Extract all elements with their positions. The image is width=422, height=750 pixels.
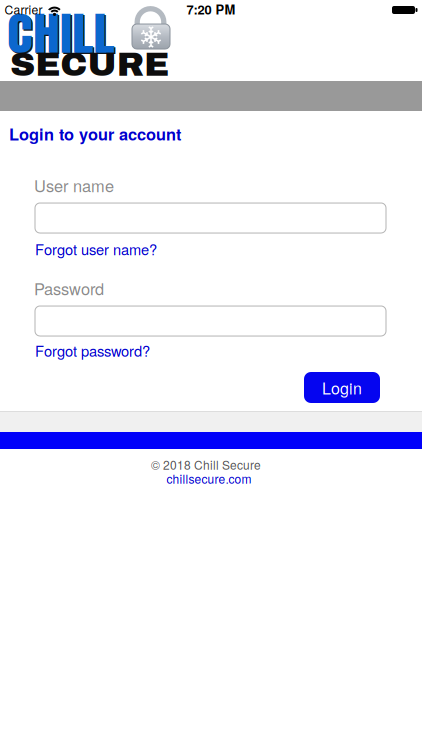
staticText: © 2018 Chill Secure — [151, 456, 261, 473]
button[interactable]: Forgot user name? — [35, 238, 157, 259]
button[interactable]: chillsecure.com — [166, 470, 251, 487]
staticText: CHILL — [8, 0, 99, 69]
staticText: Password — [34, 276, 104, 300]
staticText: chillsecure.com — [166, 470, 251, 487]
button[interactable]: Forgot password? — [35, 340, 150, 361]
staticText: User name — [34, 173, 114, 197]
button[interactable]: Login — [304, 372, 380, 403]
staticText: Forgot password? — [35, 340, 150, 361]
staticText: Carrier — [4, 0, 42, 18]
staticText: 7:20 PM — [186, 0, 235, 18]
staticText: CHILL — [7, 0, 98, 68]
button[interactable] — [35, 306, 386, 336]
staticText: Login — [322, 376, 362, 399]
staticText: Forgot user name? — [35, 238, 157, 259]
staticText: SECURE — [10, 46, 162, 83]
button[interactable] — [35, 203, 386, 233]
staticText: Login to your account — [9, 122, 181, 145]
